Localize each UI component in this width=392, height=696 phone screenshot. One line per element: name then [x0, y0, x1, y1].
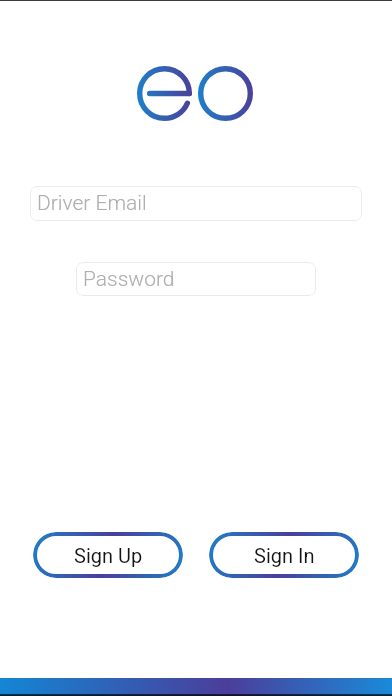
- staticText: Sign In: [254, 544, 315, 567]
- button[interactable]: Driver Email: [30, 186, 362, 221]
- staticText: Password: [83, 267, 175, 292]
- button[interactable]: Sign Up: [33, 532, 183, 578]
- button[interactable]: Sign In: [209, 532, 359, 578]
- staticText: Sign Up: [74, 544, 143, 567]
- button[interactable]: Password: [76, 262, 316, 296]
- staticText: Driver Email: [37, 191, 147, 216]
